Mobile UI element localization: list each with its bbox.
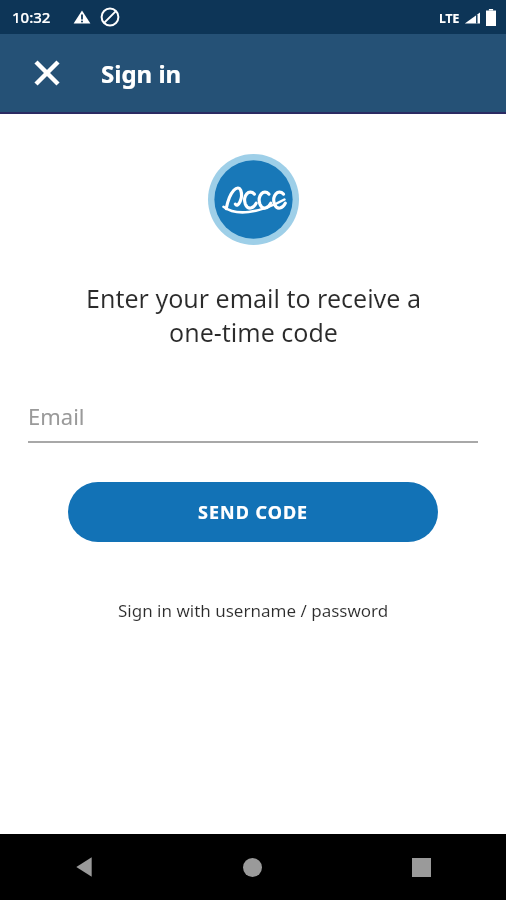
button[interactable]: Home	[168, 834, 337, 900]
staticText: Sign in with username / password	[118, 599, 389, 622]
button[interactable]: Sign in with username / password	[106, 593, 401, 628]
staticText: LTE	[439, 10, 460, 26]
staticText: Enter your email to receive a one-time c…	[86, 281, 421, 349]
staticText: Sign in	[101, 57, 182, 90]
button[interactable]: Close	[22, 48, 72, 98]
button[interactable]: Email	[28, 393, 478, 443]
staticText: Email	[28, 401, 85, 431]
button[interactable]: Recent apps	[337, 834, 506, 900]
staticText: 10:32	[12, 7, 51, 27]
button[interactable]: SEND CODE	[68, 482, 438, 542]
staticText: SEND CODE	[198, 500, 309, 525]
button[interactable]: Back	[0, 834, 168, 900]
